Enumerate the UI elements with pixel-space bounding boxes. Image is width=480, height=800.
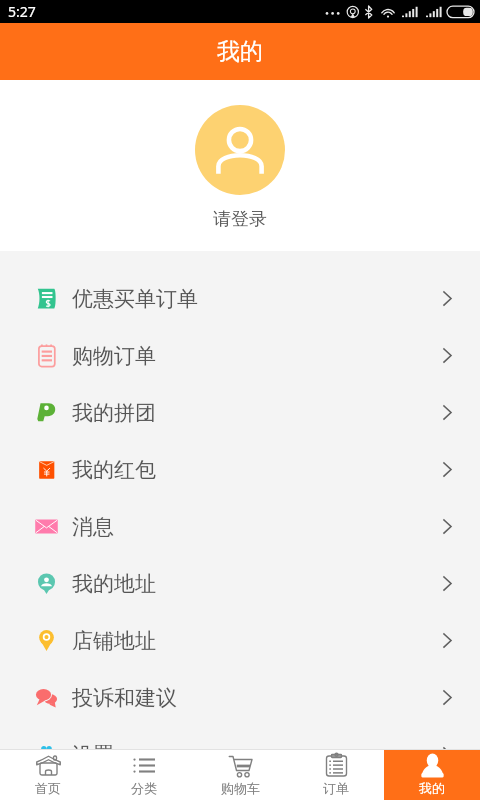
button[interactable]: 投诉和建议 bbox=[0, 669, 480, 726]
button[interactable]: 我的地址 bbox=[0, 555, 480, 612]
staticText: 购物车 bbox=[221, 780, 260, 796]
staticText: 店铺地址 bbox=[72, 628, 156, 654]
staticText: 5:27 bbox=[8, 2, 36, 21]
button[interactable]: 我的 bbox=[384, 750, 480, 800]
button[interactable]: 购物车 bbox=[192, 750, 288, 800]
staticText: 消息 bbox=[72, 514, 114, 540]
staticText: 设置 bbox=[72, 742, 114, 768]
staticText: 分类 bbox=[131, 780, 157, 796]
staticText: 我的 bbox=[217, 37, 263, 66]
button[interactable]: 优惠买单订单 bbox=[0, 270, 480, 327]
staticText: 购物订单 bbox=[72, 343, 156, 369]
button[interactable]: 首页 bbox=[0, 750, 96, 800]
button[interactable]: 我的红包 bbox=[0, 441, 480, 498]
button[interactable]: 消息 bbox=[0, 498, 480, 555]
staticText: 我的地址 bbox=[72, 571, 156, 597]
staticText: 我的 bbox=[419, 780, 445, 796]
button[interactable]: 我的拼团 bbox=[0, 384, 480, 441]
staticText: 首页 bbox=[35, 780, 61, 796]
staticText: 优惠买单订单 bbox=[72, 286, 198, 312]
button[interactable]: 购物订单 bbox=[0, 327, 480, 384]
staticText: 请登录 bbox=[213, 208, 267, 231]
button[interactable]: 订单 bbox=[288, 750, 384, 800]
button[interactable]: 设置 bbox=[0, 726, 480, 783]
staticText: 我的红包 bbox=[72, 457, 156, 483]
staticText: 投诉和建议 bbox=[72, 685, 177, 711]
staticText: 我的拼团 bbox=[72, 400, 156, 426]
staticText: 订单 bbox=[323, 780, 349, 796]
button[interactable]: 店铺地址 bbox=[0, 612, 480, 669]
button[interactable]: 分类 bbox=[96, 750, 192, 800]
button[interactable]: Avatar bbox=[195, 105, 285, 195]
